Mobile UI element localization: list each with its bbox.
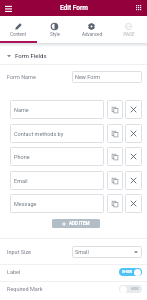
button[interactable]: Email [10,171,104,190]
button[interactable]: Remove [125,100,142,119]
button[interactable]: Duplicate [107,100,123,119]
button[interactable]: Small [72,246,142,258]
button[interactable]: ADD ITEM [52,219,100,228]
staticText: Small [75,249,89,255]
staticText: Contact methods by [14,131,64,137]
button[interactable]: Remove [125,124,142,143]
staticText: Email [14,178,28,184]
button[interactable]: Duplicate [107,171,123,190]
staticText: Form Fields [15,52,47,59]
button[interactable]: Required Mark [0,281,147,297]
button[interactable]: Label [0,264,147,280]
staticText: New Form [75,74,101,80]
staticText: Advanced [82,32,102,37]
staticText: ADD ITEM [69,221,90,226]
button[interactable]: Style [36,16,73,43]
staticText: PAGE [123,32,135,37]
button[interactable]: Message [10,194,104,213]
button[interactable]: New Form [72,71,142,83]
button[interactable]: PAGE [110,16,147,43]
staticText: Required Mark [7,286,43,292]
staticText: SHOW [122,270,133,274]
button[interactable]: Remove [125,171,142,190]
button[interactable]: Duplicate [107,124,123,143]
staticText: HIDE [131,287,139,291]
staticText: Style [50,32,60,37]
staticText: Message [14,201,37,207]
button[interactable]: Remove [125,194,142,213]
button[interactable]: Remove [125,147,142,166]
button[interactable]: Name [10,100,104,119]
staticText: Label [7,269,21,275]
staticText: Edit Form [60,4,88,12]
button[interactable]: Form Fields [0,47,147,64]
button[interactable]: Content [0,16,36,43]
staticText: Content [10,32,26,37]
button[interactable]: Apps [131,0,147,16]
button[interactable]: Menu [0,0,16,16]
button[interactable]: Duplicate [107,194,123,213]
staticText: Form Name [7,74,36,80]
button[interactable]: Duplicate [107,147,123,166]
button[interactable]: Contact methods by [10,124,104,143]
staticText: Phone [14,154,30,160]
button[interactable]: Advanced [73,16,110,43]
button[interactable]: Phone [10,147,104,166]
staticText: Name [14,107,29,113]
staticText: Input Size [7,249,32,255]
